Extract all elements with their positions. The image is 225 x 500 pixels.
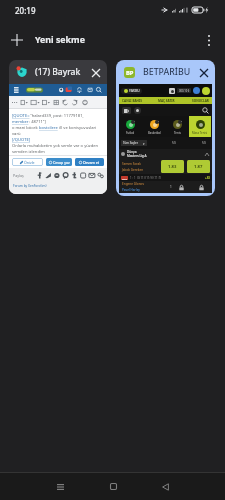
staticText: Forum by XenForo(tm) [13, 184, 47, 188]
staticText: Yeni sekme [35, 34, 85, 46]
staticText: BP [126, 69, 134, 77]
staticText: CANLI BAHIS [122, 99, 142, 103]
button[interactable]: 2 [166, 116, 188, 137]
staticText: member [12, 119, 29, 125]
staticText: (17) Bayrak [35, 66, 86, 78]
button[interactable]: New tab [4, 27, 30, 53]
staticText: ▾ [143, 142, 145, 145]
staticText: 4 [158, 120, 159, 123]
staticText: Tenis [174, 131, 181, 135]
staticText: "halard339, post: 11779181, [30, 113, 84, 119]
staticText: o mani böcek [12, 125, 39, 131]
staticText: Engene Glonov [122, 182, 144, 186]
staticText: Önizle [24, 160, 35, 165]
staticText: 1 : 1 (0:11) (11:9) (11:7) [130, 176, 161, 180]
button[interactable]: More options [196, 27, 222, 53]
staticText: Semen Sorak [122, 162, 141, 166]
staticText: Masa Tenisi [192, 131, 208, 135]
staticText: [/QUOTE] [12, 137, 31, 143]
staticText: Tüm Saçler [123, 141, 138, 145]
staticText: 13 [134, 120, 135, 123]
button[interactable]: Back [139, 473, 191, 500]
staticText: : 48711"] [29, 119, 46, 125]
staticText: 2 [181, 120, 182, 123]
button[interactable]: 1.83 [161, 160, 184, 173]
button[interactable]: Recent apps [34, 473, 87, 500]
staticText: 20:19 [15, 5, 36, 16]
staticText: PARIBU [129, 89, 140, 93]
button[interactable]: 13 [119, 116, 142, 137]
button[interactable]: Devam et [75, 158, 104, 166]
button[interactable]: Close tab [194, 63, 213, 82]
button[interactable]: 1.87 [187, 160, 210, 173]
staticText: MAÇ SATIR [158, 99, 175, 103]
button[interactable]: Önizle [12, 158, 43, 166]
button[interactable]: BP [116, 60, 215, 196]
staticText: ill ve konisyuvuslari [58, 125, 97, 131]
staticText: Onlarla muhabbetim yok semle var o yüzde… [12, 143, 99, 149]
button[interactable]: (17) Bayrak [9, 60, 107, 194]
staticText: varü [12, 131, 21, 137]
staticText: Pavel Harley [122, 188, 140, 192]
staticText: +83 [205, 176, 210, 180]
staticText: semden izlendim [12, 149, 45, 155]
staticText: Jakob Gereken [122, 168, 144, 172]
staticText: 000.10 ₺ [179, 89, 190, 93]
staticText: 1 [170, 185, 172, 189]
staticText: Devam et [83, 160, 100, 165]
staticText: 0:54 [122, 177, 127, 180]
button[interactable]: Home [87, 473, 139, 500]
button[interactable]: Masa Tenisi [189, 116, 211, 137]
staticText: 1.87 [194, 164, 203, 170]
staticText: Cevap yaz [53, 160, 70, 165]
staticText: bostcilere [39, 125, 58, 131]
button[interactable]: Close tab [86, 63, 105, 82]
button[interactable]: Search [201, 106, 209, 114]
button[interactable]: Cevap yaz [46, 158, 72, 166]
staticText: Masters Lig A [127, 154, 147, 158]
staticText: Basketbol [148, 131, 161, 135]
staticText: 1.83 [168, 164, 177, 170]
staticText: MS [202, 141, 207, 145]
staticText: BETPARİBU [143, 66, 194, 78]
staticText: Futbol [126, 131, 135, 135]
staticText: SONUCLAR [192, 99, 209, 103]
staticText: MS [172, 141, 177, 145]
staticText: [QUOTE= [12, 113, 30, 119]
staticText: Dünya [127, 150, 137, 154]
button[interactable]: 4 [143, 116, 165, 137]
staticText: Paylaş [13, 173, 24, 178]
